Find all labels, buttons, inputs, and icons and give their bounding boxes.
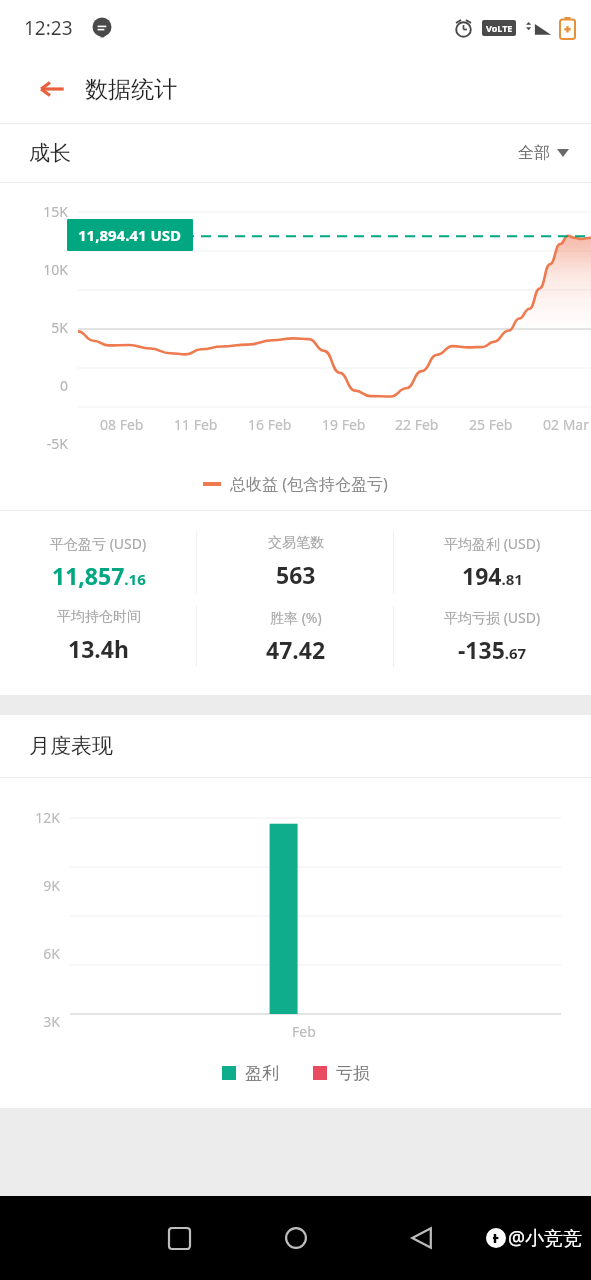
staticText: 平均盈利 (USD) <box>444 534 541 553</box>
staticText: -5K <box>0 434 68 453</box>
staticText: 563 <box>276 559 316 590</box>
staticText: 16 Feb <box>248 415 292 434</box>
staticText: 25 Feb <box>469 415 513 434</box>
staticText: 15K <box>0 202 68 221</box>
staticText: 10K <box>0 260 68 279</box>
staticText: 5K <box>0 318 68 337</box>
staticText: 平均持仓时间 <box>57 608 141 626</box>
button[interactable]: Back <box>30 67 74 111</box>
staticText: 0 <box>0 376 68 395</box>
staticText: 47.42 <box>266 634 326 665</box>
staticText: 数据统计 <box>85 75 177 104</box>
staticText: 13.4h <box>68 633 129 664</box>
button[interactable]: Recents <box>155 1214 203 1262</box>
staticText: 12:23 <box>24 15 73 41</box>
staticText: 02 Mar <box>543 415 589 434</box>
staticText: 交易笔数 <box>268 534 324 552</box>
staticText: 11,857.16 <box>52 560 146 591</box>
staticText: 亏损 <box>336 1063 370 1084</box>
staticText: 12K <box>0 808 60 827</box>
staticText: 平仓盈亏 (USD) <box>50 534 147 553</box>
button[interactable]: 全部 <box>518 143 569 163</box>
staticText: Feb <box>292 1022 316 1041</box>
staticText: @小竞竞 <box>508 1225 583 1251</box>
staticText: 平均亏损 (USD) <box>444 608 541 627</box>
staticText: 3K <box>0 1012 60 1031</box>
staticText: 胜率 (%) <box>270 608 322 627</box>
staticText: 19 Feb <box>322 415 366 434</box>
button[interactable]: Home <box>272 1214 320 1262</box>
staticText: 月度表现 <box>29 733 113 759</box>
staticText: 11,894.41 USD <box>78 225 182 245</box>
staticText: 11 Feb <box>174 415 218 434</box>
button[interactable]: Back <box>398 1214 446 1262</box>
staticText: 22 Feb <box>395 415 439 434</box>
staticText: 6K <box>0 944 60 963</box>
staticText: 9K <box>0 876 60 895</box>
staticText: 194.81 <box>462 560 523 591</box>
staticText: 盈利 <box>245 1063 279 1084</box>
staticText: 全部 <box>518 143 550 163</box>
staticText: 成长 <box>29 140 71 166</box>
staticText: -10K <box>0 492 68 511</box>
staticText: VoLTE <box>486 22 513 34</box>
staticText: -135.67 <box>458 634 527 665</box>
staticText: 08 Feb <box>100 415 144 434</box>
staticText: 总收益 (包含持仓盈亏) <box>230 473 388 495</box>
